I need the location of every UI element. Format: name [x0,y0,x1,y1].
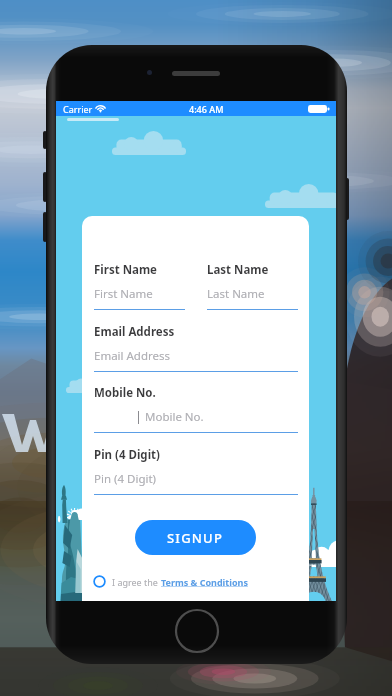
staticText: SIGNUP [167,529,224,547]
staticText: Terms & Conditions [161,576,248,588]
staticText: Email Address [94,324,175,340]
staticText: Last Name [207,262,269,278]
button[interactable]: SIGNUP [135,520,256,555]
staticText: Email Address [94,348,171,364]
staticText: Carrier [63,103,93,115]
button[interactable]: I agree the [93,572,248,591]
staticText: First Name [94,286,153,302]
staticText: Pin (4 Digit) [94,471,157,487]
staticText: Mobile No. [145,409,204,425]
staticText: I agree the [112,576,161,588]
staticText: Last Name [207,286,265,302]
staticText: First Name [94,262,157,278]
staticText: Mobile No. [94,385,156,401]
staticText: Pin (4 Digit) [94,447,160,463]
staticText: 4:46 AM [189,103,224,115]
